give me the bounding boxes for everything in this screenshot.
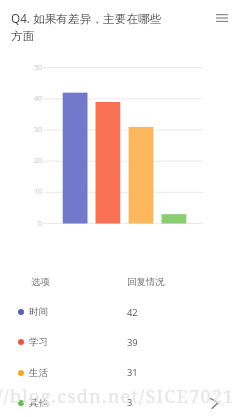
staticText: 42 <box>127 306 138 319</box>
staticText: 生活 <box>29 367 48 379</box>
staticText: 39 <box>127 336 138 349</box>
button[interactable]: 时间 <box>0 297 243 327</box>
button[interactable]: 其他 <box>0 388 243 417</box>
button[interactable]: More options <box>211 7 233 29</box>
staticText: 50 <box>33 63 42 73</box>
staticText: 20 <box>33 156 42 166</box>
staticText: //blog.csdn.net/SICE7021 <box>0 384 235 409</box>
staticText: 时间 <box>29 306 48 318</box>
staticText: 0 <box>37 219 42 229</box>
staticText: 31 <box>127 366 138 379</box>
staticText: 40 <box>33 94 42 104</box>
staticText: 3 <box>127 396 133 409</box>
staticText: Q4. 如果有差异，主要在哪些方面 <box>11 10 167 44</box>
staticText: 30 <box>33 125 42 135</box>
button[interactable]: 学习 <box>0 327 243 357</box>
staticText: 回复情况 <box>127 276 165 288</box>
staticText: 学习 <box>29 336 48 348</box>
staticText: 其他 <box>29 397 48 409</box>
button[interactable]: 生活 <box>0 357 243 388</box>
staticText: 选项 <box>31 276 50 288</box>
staticText: 10 <box>33 187 42 197</box>
